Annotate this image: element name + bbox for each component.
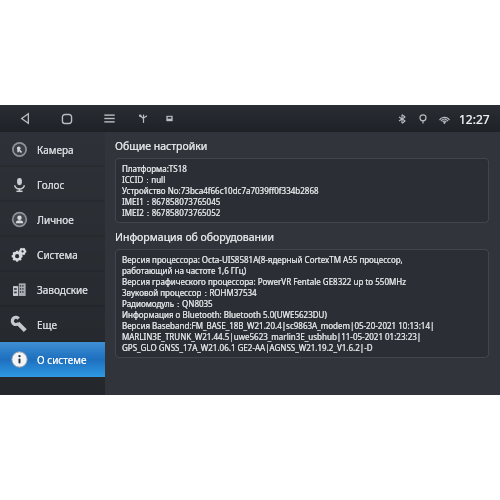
- staticText: MARLIN3E_TRUNK_W21.44.5|uwe5623_marlin3E…: [122, 331, 422, 342]
- staticText: Общие настройки: [115, 139, 208, 153]
- button[interactable]: О системе: [0, 342, 105, 377]
- staticText: Информация о Bluetooth: Bluetooth 5.0(UW…: [122, 309, 327, 320]
- staticText: ICCID：null: [122, 174, 166, 185]
- staticText: Голос: [37, 178, 65, 192]
- staticText: Версия процессора: Octa-UIS8581A(8-ядерн…: [122, 254, 403, 265]
- staticText: IMEI1：867858073765045: [122, 196, 221, 207]
- staticText: IMEI2：867858073765052: [122, 207, 221, 218]
- button[interactable]: Еще: [0, 307, 105, 342]
- staticText: Версия графического процессора: PowerVR …: [122, 276, 406, 287]
- staticText: GPS_GLO GNSS_17A_W21.06.1 GE2-AA|AGNSS_W…: [122, 342, 373, 353]
- staticText: работающий на частоте 1,6 ГГц): [122, 265, 247, 276]
- staticText: О системе: [37, 353, 87, 367]
- staticText: Звуковой процессор：ROHM37534: [122, 287, 257, 298]
- button[interactable]: Личное: [0, 202, 105, 237]
- staticText: Платформа:TS18: [122, 163, 187, 174]
- button[interactable]: Платформа:TS18: [115, 158, 489, 223]
- staticText: Радиомодуль：QN8035: [122, 298, 213, 309]
- staticText: Версия Baseband:FM_BASE_18B_W21.20.4|sc9…: [122, 320, 435, 331]
- staticText: Камера: [37, 143, 74, 157]
- button[interactable]: Recent apps: [94, 105, 124, 132]
- button[interactable]: Home: [52, 105, 82, 132]
- staticText: Личное: [37, 213, 74, 227]
- staticText: Еще: [37, 318, 58, 332]
- staticText: Устройство No:73bca4f66c10dc7a7039ff0f33…: [122, 185, 319, 196]
- button[interactable]: Back: [10, 105, 40, 132]
- button[interactable]: Голос: [0, 167, 105, 202]
- staticText: Система: [37, 248, 78, 262]
- staticText: 12:27: [459, 111, 490, 127]
- button[interactable]: Система: [0, 237, 105, 272]
- button[interactable]: Камера: [0, 132, 105, 167]
- staticText: Заводские: [37, 283, 88, 297]
- button[interactable]: Версия процессора: Octa-UIS8581A(8-ядерн…: [115, 249, 489, 358]
- button[interactable]: Заводские: [0, 272, 105, 307]
- staticText: Информация об оборудовании: [115, 230, 275, 244]
